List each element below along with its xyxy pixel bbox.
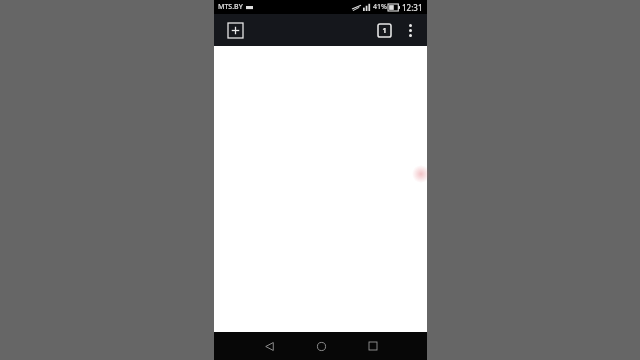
staticText: 41% [373, 2, 387, 12]
staticText: 12:31 [402, 2, 423, 13]
button[interactable]: New tab [222, 17, 248, 43]
button[interactable]: Tabs [371, 17, 397, 43]
staticText: 1 [382, 26, 387, 36]
button[interactable]: Recent apps [351, 332, 395, 360]
button[interactable]: Back [247, 332, 291, 360]
button[interactable]: Home [299, 332, 343, 360]
staticText: MTS.BY [218, 2, 243, 12]
button[interactable]: More options [397, 17, 423, 43]
